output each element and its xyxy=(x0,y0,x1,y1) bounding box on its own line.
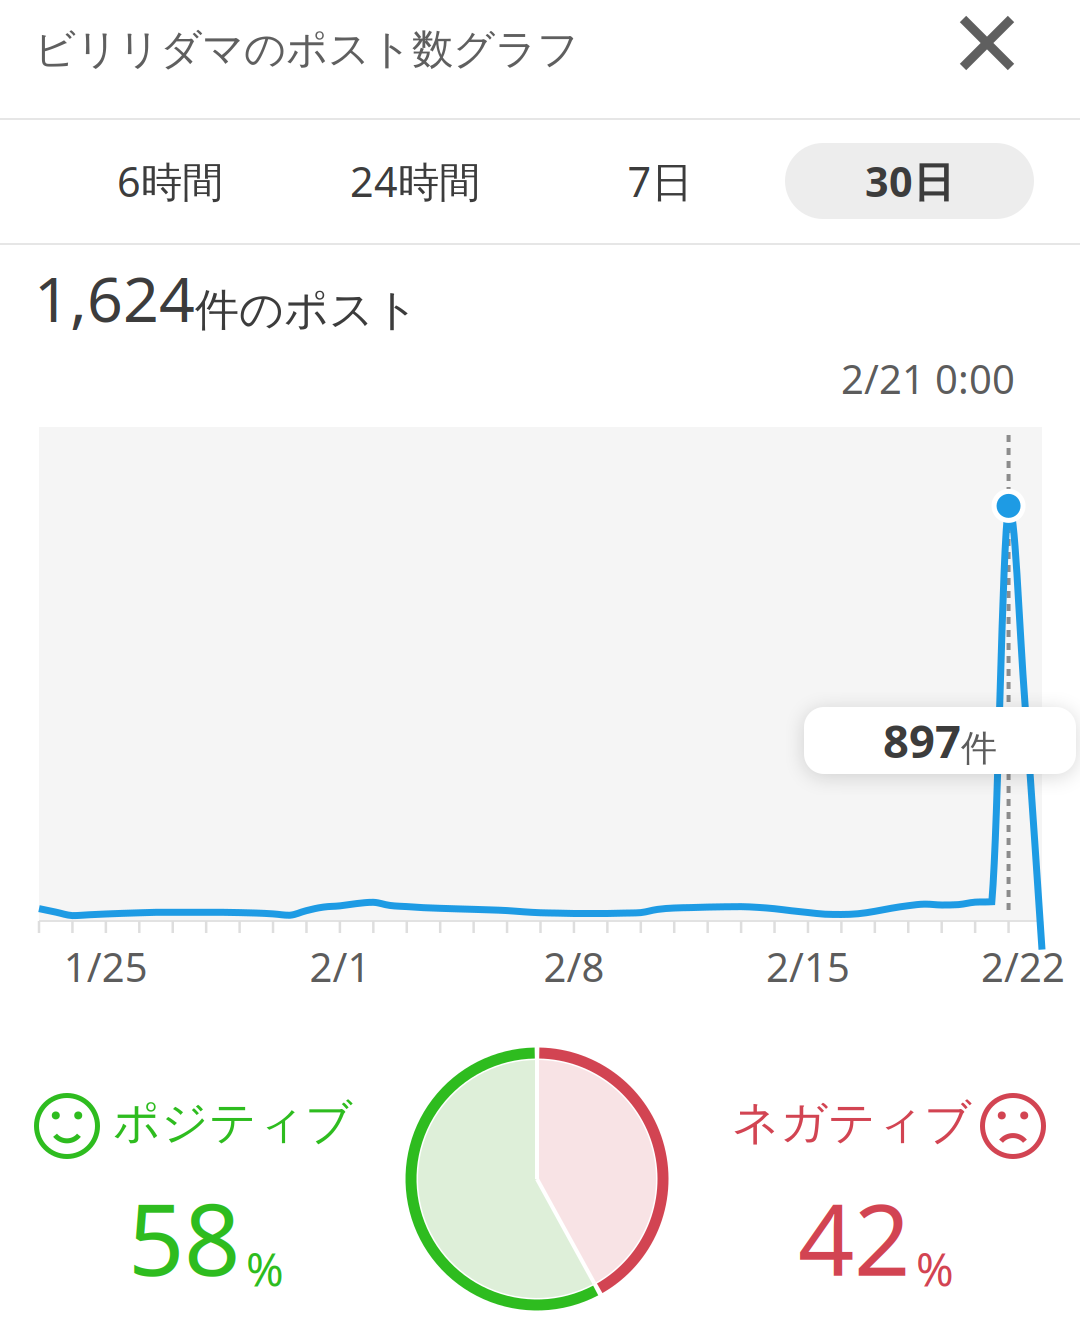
staticText: 24時間 xyxy=(350,154,480,208)
staticText: ネガティブ xyxy=(732,1094,972,1151)
staticText: 1,624 xyxy=(34,256,195,339)
staticText: 件のポスト xyxy=(195,283,419,337)
staticText: 7日 xyxy=(627,154,692,208)
staticText: 2/22 xyxy=(981,940,1065,993)
staticText: 897 xyxy=(883,710,961,771)
staticText: ポジティブ xyxy=(113,1094,353,1151)
button[interactable]: 30日 xyxy=(785,143,1034,219)
staticText: 2/15 xyxy=(766,940,850,993)
button[interactable]: 24時間 xyxy=(305,131,525,231)
staticText: ビリリダマのポスト数グラフ xyxy=(34,24,579,75)
staticText: 2/21 0:00 xyxy=(841,352,1015,405)
staticText: 58 xyxy=(128,1172,240,1303)
staticText: 2/8 xyxy=(543,940,604,993)
button[interactable]: 閉じる xyxy=(933,0,1041,97)
staticText: 件 xyxy=(961,726,997,770)
button[interactable]: 7日 xyxy=(580,131,740,231)
staticText: 1/25 xyxy=(64,940,148,993)
button[interactable]: 6時間 xyxy=(70,131,270,231)
staticText: 6時間 xyxy=(117,154,223,208)
staticText: 42 xyxy=(798,1172,910,1303)
staticText: 2/1 xyxy=(309,940,370,993)
staticText: 30日 xyxy=(865,153,954,209)
staticText: % xyxy=(916,1239,954,1299)
staticText: % xyxy=(246,1239,284,1299)
